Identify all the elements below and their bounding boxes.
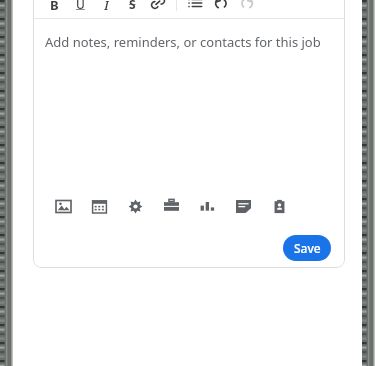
staticText: U bbox=[76, 0, 85, 10]
button[interactable]: Add notes, reminders, or contacts for th… bbox=[33, 19, 345, 189]
button[interactable]: Italic bbox=[93, 0, 119, 16]
button[interactable]: Insert link bbox=[145, 0, 171, 16]
button[interactable]: Save bbox=[283, 235, 331, 261]
button[interactable]: Add chart bbox=[189, 191, 225, 221]
button[interactable]: Bold bbox=[41, 0, 67, 16]
button[interactable]: Add image bbox=[45, 191, 81, 221]
staticText: Save bbox=[294, 240, 321, 256]
button[interactable]: Add date bbox=[81, 191, 117, 221]
button[interactable]: Add contact bbox=[261, 191, 297, 221]
staticText: B bbox=[50, 0, 59, 10]
button[interactable]: Settings bbox=[117, 191, 153, 221]
staticText: Add notes, reminders, or contacts for th… bbox=[45, 33, 321, 51]
button[interactable]: Add note bbox=[225, 191, 261, 221]
staticText: I bbox=[104, 0, 109, 10]
staticText: S bbox=[129, 0, 136, 10]
button[interactable]: Underline bbox=[67, 0, 93, 16]
button[interactable]: Redo bbox=[234, 0, 260, 16]
button[interactable]: Bulleted list bbox=[182, 0, 208, 16]
button[interactable]: Strikethrough bbox=[119, 0, 145, 16]
button[interactable]: Undo bbox=[208, 0, 234, 16]
button[interactable]: Add job bbox=[153, 191, 189, 221]
